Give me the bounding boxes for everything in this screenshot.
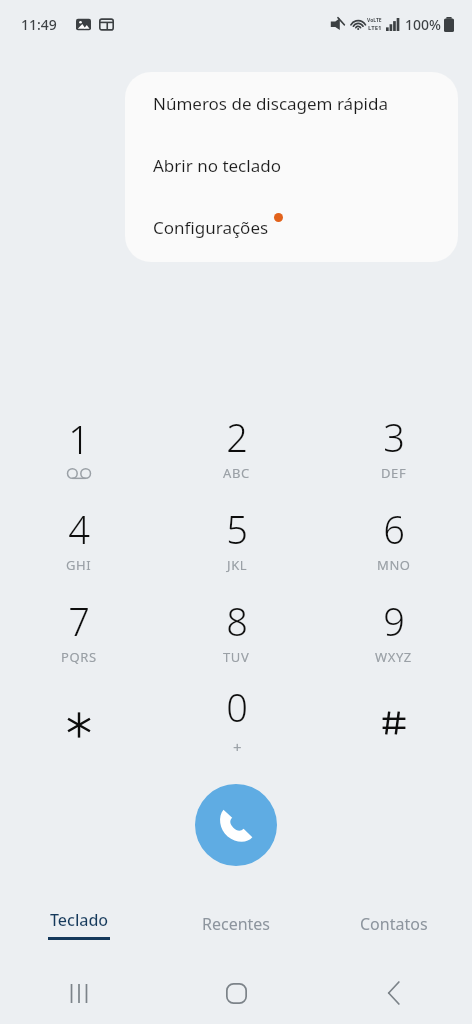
button[interactable]: 7 <box>0 584 158 676</box>
staticText: 9 <box>383 595 405 647</box>
button[interactable]: Contatos <box>315 898 472 950</box>
button[interactable]: Configurações <box>125 196 458 258</box>
staticText: 8 <box>226 595 248 647</box>
staticText: Abrir no teclado <box>153 154 281 177</box>
button[interactable]: 4 <box>0 492 158 584</box>
staticText: 4 <box>68 503 90 555</box>
button[interactable]: Números de discagem rápida <box>125 72 458 134</box>
staticText: JKL <box>227 556 248 574</box>
staticText: 6 <box>383 503 405 555</box>
staticText: 100% <box>405 15 441 34</box>
staticText: Recentes <box>202 913 271 935</box>
staticText: VoLTE <box>367 17 382 24</box>
button[interactable]: 5 <box>158 492 315 584</box>
button[interactable] <box>0 676 158 762</box>
staticText: + <box>233 737 242 757</box>
staticText: 5 <box>226 503 248 555</box>
button[interactable]: Recent apps <box>0 962 158 1024</box>
button[interactable]: 0 <box>158 676 315 762</box>
staticText: 7 <box>68 595 90 647</box>
button[interactable]: 1 <box>0 400 158 492</box>
staticText: Números de discagem rápida <box>153 92 388 115</box>
button[interactable]: Teclado <box>0 898 158 950</box>
staticText: PQRS <box>61 648 97 666</box>
staticText: Contatos <box>360 913 428 935</box>
staticText: 0 <box>226 681 248 733</box>
staticText: LTE1 <box>368 24 382 32</box>
staticText: 11:49 <box>21 15 57 34</box>
button[interactable] <box>315 676 472 762</box>
staticText: MNO <box>377 556 411 574</box>
button[interactable]: Recentes <box>158 898 315 950</box>
button[interactable]: 3 <box>315 400 472 492</box>
button[interactable]: Home <box>158 962 315 1024</box>
staticText: Teclado <box>50 909 109 931</box>
staticText: DEF <box>381 464 407 482</box>
staticText: TUV <box>223 648 250 666</box>
staticText: 2 <box>226 411 248 463</box>
staticText: GHI <box>66 556 92 574</box>
staticText: ABC <box>223 464 250 482</box>
button[interactable]: 9 <box>315 584 472 676</box>
staticText: Configurações <box>153 216 269 239</box>
button[interactable]: 8 <box>158 584 315 676</box>
button[interactable]: Back <box>315 962 472 1024</box>
staticText: 3 <box>383 411 405 463</box>
button[interactable]: Abrir no teclado <box>125 134 458 196</box>
staticText: WXYZ <box>375 648 412 666</box>
button[interactable]: 2 <box>158 400 315 492</box>
button[interactable]: Call <box>195 784 277 866</box>
button[interactable]: 6 <box>315 492 472 584</box>
staticText: 1 <box>68 413 90 465</box>
